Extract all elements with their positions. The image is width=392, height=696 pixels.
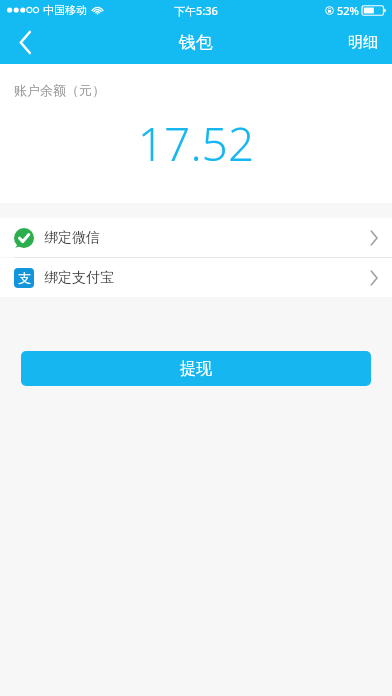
staticText: 账户余额（元） (14, 82, 105, 98)
button[interactable]: 绑定微信 (0, 218, 392, 257)
button[interactable]: 支 (0, 258, 392, 297)
staticText: 中国移动 (43, 3, 87, 17)
staticText: 下午5:36 (174, 3, 218, 18)
button[interactable]: Back (0, 20, 52, 64)
button[interactable]: 提现 (21, 351, 371, 386)
staticText: 明细 (348, 33, 378, 52)
staticText: 绑定微信 (44, 229, 100, 247)
button[interactable]: 明细 (334, 20, 392, 64)
staticText: 支 (18, 270, 31, 286)
staticText: 17.52 (0, 112, 392, 175)
staticText: 52% (337, 3, 359, 18)
staticText: 绑定支付宝 (44, 269, 114, 287)
staticText: 提现 (180, 359, 212, 379)
staticText: 钱包 (179, 32, 213, 53)
